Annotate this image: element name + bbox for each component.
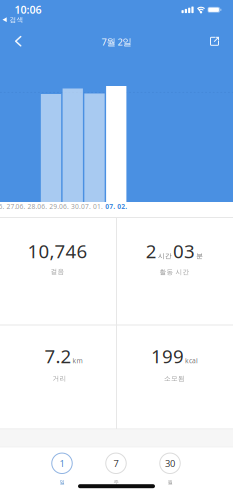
staticText: 06. 30. bbox=[59, 202, 81, 211]
staticText: 10:06 bbox=[14, 2, 41, 17]
staticText: 분 bbox=[196, 252, 203, 260]
staticText: 10,746 bbox=[27, 239, 87, 263]
staticText: 07. 01. bbox=[81, 202, 103, 211]
button[interactable]: 1 bbox=[44, 451, 80, 487]
button[interactable]: Share bbox=[210, 37, 219, 46]
staticText: 7 bbox=[113, 457, 118, 470]
button[interactable]: 30 bbox=[152, 451, 188, 487]
staticText: 2 bbox=[146, 239, 157, 263]
staticText: 199 bbox=[151, 344, 184, 368]
staticText: kcal bbox=[185, 356, 198, 365]
staticText: km bbox=[73, 356, 83, 365]
staticText: 소모됨 bbox=[164, 374, 185, 383]
staticText: 검색 bbox=[9, 16, 23, 24]
staticText: 07. 02. bbox=[105, 202, 127, 211]
staticText: 거리 bbox=[52, 374, 66, 383]
staticText: 월 bbox=[167, 479, 172, 486]
staticText: 1 bbox=[59, 457, 64, 470]
staticText: 7.2 bbox=[44, 344, 71, 368]
staticText: 30 bbox=[165, 457, 175, 470]
staticText: 06. 29. bbox=[37, 202, 59, 211]
staticText: 일 bbox=[59, 479, 64, 486]
staticText: 06. 27. bbox=[0, 202, 16, 211]
button[interactable]: 7 bbox=[98, 451, 134, 487]
staticText: 주 bbox=[113, 479, 118, 486]
staticText: 06. 28. bbox=[15, 202, 37, 211]
staticText: 걸음 bbox=[50, 267, 64, 276]
staticText: 활동 시간 bbox=[159, 268, 189, 276]
button[interactable]: Back bbox=[14, 36, 22, 47]
staticText: 시간 bbox=[158, 252, 172, 260]
staticText: 7월 2일 bbox=[101, 36, 131, 48]
staticText: 03 bbox=[173, 239, 195, 263]
